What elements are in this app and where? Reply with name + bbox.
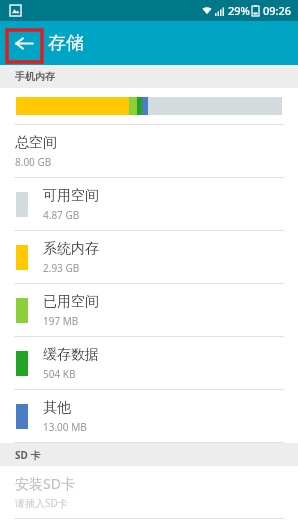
staticText: 请插入SD卡	[15, 496, 68, 510]
staticText: 系统内存	[43, 240, 99, 258]
staticText: 安装SD卡	[15, 474, 75, 493]
button[interactable]: 其他	[0, 390, 298, 442]
staticText: SD 卡	[15, 448, 41, 462]
staticText: 09:26	[263, 3, 292, 18]
button[interactable]: 缓存数据	[0, 337, 298, 389]
staticText: 2.93 GB	[43, 261, 80, 275]
button[interactable]: 安装SD卡	[0, 466, 298, 518]
button[interactable]: 已用空间	[0, 284, 298, 336]
staticText: 可用空间	[43, 187, 99, 205]
staticText: 缓存数据	[43, 346, 99, 364]
button[interactable]: 可用空间	[0, 178, 298, 230]
button[interactable]: Back	[7, 27, 42, 59]
button[interactable]: 总空间	[0, 125, 298, 177]
staticText: 504 KB	[43, 367, 76, 381]
staticText: 总空间	[15, 134, 57, 152]
button[interactable]: 系统内存	[0, 231, 298, 283]
staticText: 存储	[48, 32, 84, 55]
staticText: 13.00 MB	[43, 420, 87, 434]
staticText: 手机内存	[15, 70, 55, 83]
staticText: 197 MB	[43, 314, 79, 328]
staticText: 4.87 GB	[43, 208, 80, 222]
staticText: 8.00 GB	[15, 155, 52, 169]
staticText: 29%	[228, 3, 250, 18]
staticText: 其他	[43, 399, 71, 417]
staticText: 已用空间	[43, 293, 99, 311]
